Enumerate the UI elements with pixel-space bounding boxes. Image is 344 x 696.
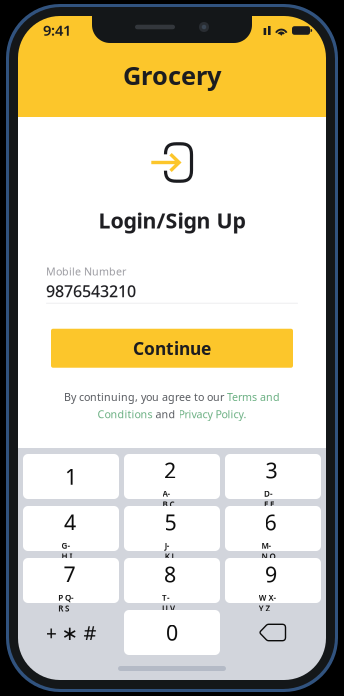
button[interactable]: 7 <box>23 558 119 603</box>
button[interactable]: Privacy Policy. <box>178 407 246 421</box>
staticText: 9:41 <box>43 20 71 40</box>
staticText: 8 <box>164 560 176 588</box>
staticText: and <box>152 407 178 421</box>
staticText: TUV <box>162 592 178 614</box>
button[interactable]: 9 <box>225 558 321 603</box>
button[interactable]: 5 <box>124 506 220 551</box>
staticText: 9876543210 <box>46 280 136 302</box>
button[interactable]: Symbols <box>23 610 119 655</box>
staticText: ABC <box>163 488 177 510</box>
staticText: 1 <box>65 462 77 491</box>
staticText: 0 <box>166 618 178 647</box>
staticText: GHI <box>62 540 78 562</box>
button[interactable]: 3 <box>225 454 321 499</box>
button[interactable]: 0 <box>124 610 220 655</box>
staticText: Login/Sign Up <box>98 206 245 234</box>
button[interactable]: 6 <box>225 506 321 551</box>
staticText: Privacy Policy. <box>178 407 246 421</box>
staticText: 4 <box>64 508 76 536</box>
button[interactable]: 4 <box>23 506 119 551</box>
staticText: Grocery <box>123 58 221 92</box>
button[interactable]: Delete <box>225 610 321 655</box>
button[interactable]: 8 <box>124 558 220 603</box>
staticText: + ∗ # <box>45 619 96 646</box>
staticText: Mobile Number <box>46 264 126 278</box>
staticText: Conditions <box>97 407 152 421</box>
button[interactable]: Terms and <box>227 390 280 404</box>
button[interactable]: Continue <box>51 329 293 368</box>
staticText: Continue <box>133 337 211 360</box>
staticText: WXYZ <box>259 592 283 614</box>
staticText: 9 <box>265 560 277 588</box>
staticText: 7 <box>63 560 75 588</box>
staticText: Terms and <box>227 390 280 404</box>
button[interactable]: Conditions <box>97 407 152 421</box>
staticText: MNO <box>262 540 279 562</box>
staticText: DEF <box>264 488 279 510</box>
staticText: JKL <box>165 540 176 562</box>
staticText: 6 <box>264 508 276 536</box>
staticText: PQRS <box>58 592 81 614</box>
staticText: 3 <box>265 456 277 484</box>
button[interactable]: 1 <box>23 454 119 499</box>
staticText: 5 <box>165 508 177 536</box>
button[interactable]: 2 <box>124 454 220 499</box>
staticText: 2 <box>164 456 176 484</box>
staticText: By continuing, you agree to our <box>64 390 227 404</box>
